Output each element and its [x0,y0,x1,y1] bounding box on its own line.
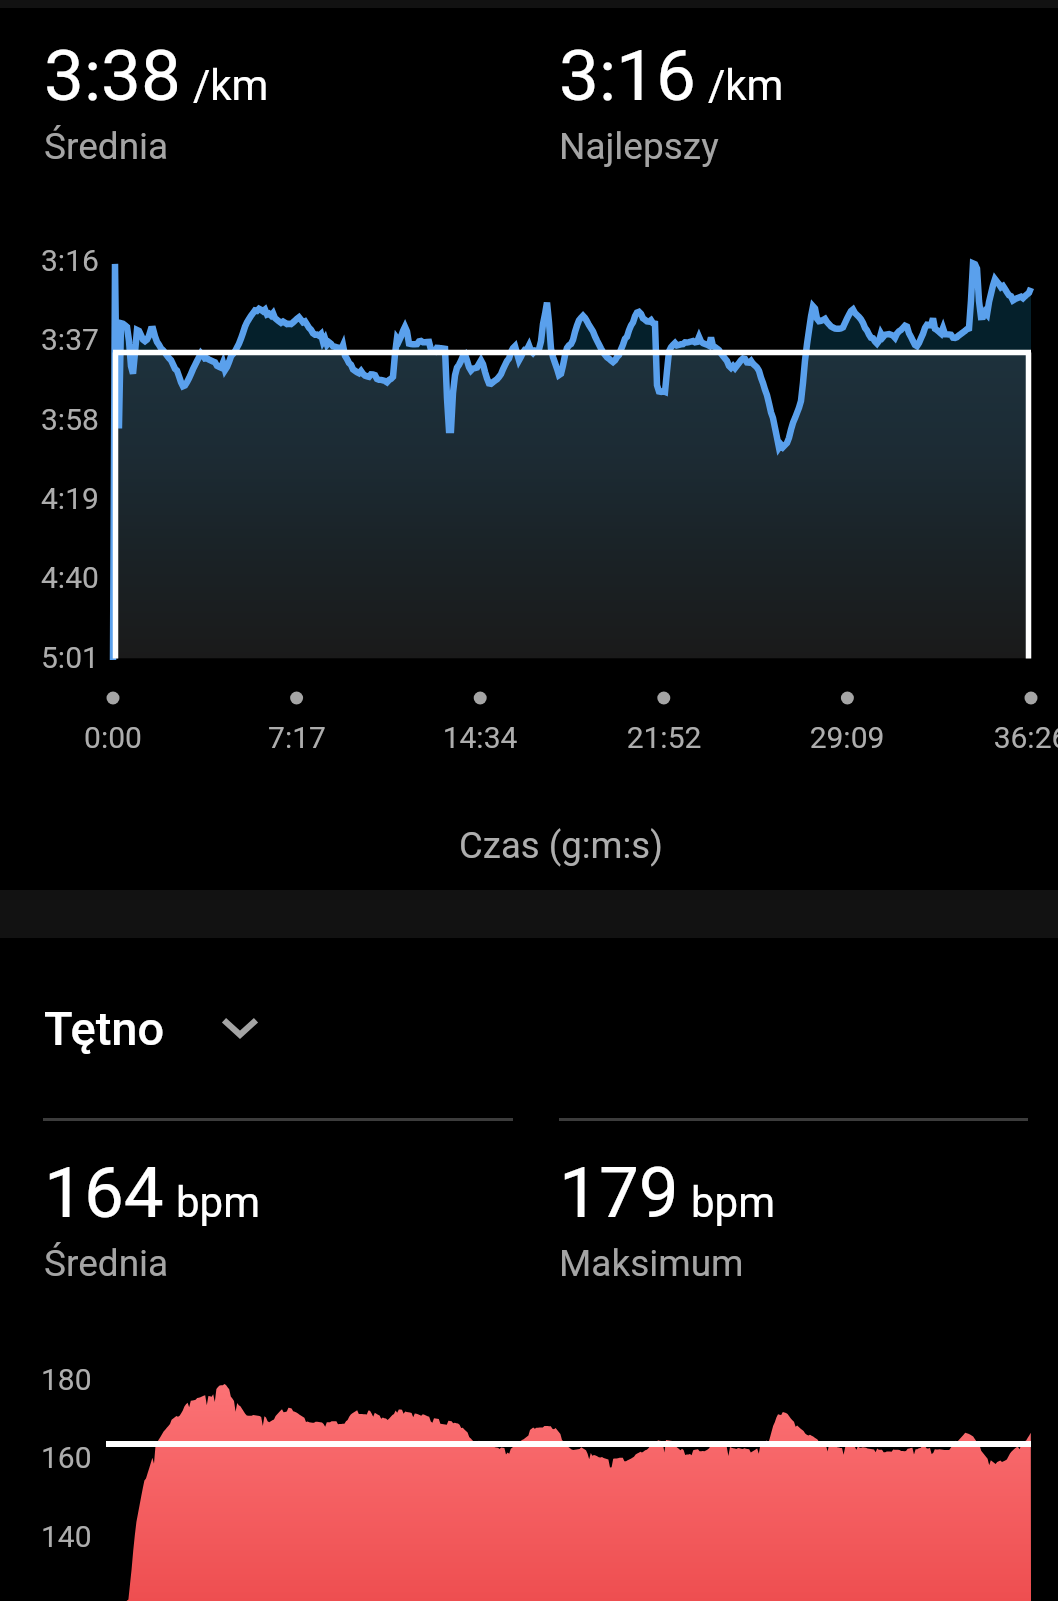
staticText: 29:09 [787,720,907,755]
button[interactable]: 3:38 [0,34,515,174]
staticText: 14:34 [420,720,540,755]
staticText: 179 [559,1151,679,1234]
staticText: Średnia [44,125,169,168]
staticText: 5:01 [41,640,99,675]
staticText: Najlepszy [559,125,719,168]
staticText: bpm [176,1178,260,1227]
staticText: 140 [41,1519,92,1554]
staticText: 164 [44,1151,164,1234]
staticText: 180 [41,1362,92,1397]
staticText: 4:40 [41,560,99,595]
staticText: 3:37 [41,322,99,357]
button[interactable]: 164 [0,1151,515,1291]
staticText: Tętno [44,1001,165,1056]
staticText: 3:58 [41,402,99,437]
button[interactable]: 3:16 [515,34,1030,174]
staticText: Maksimum [559,1242,744,1285]
staticText: 7:17 [237,720,357,755]
staticText: 4:19 [41,481,99,516]
staticText: 160 [41,1440,92,1475]
staticText: Czas (g:m:s) [48,824,1058,867]
staticText: 3:16 [559,34,696,117]
staticText: 3:38 [44,34,181,117]
button[interactable]: 179 [515,1151,1030,1291]
staticText: /km [708,61,784,110]
staticText: /km [193,61,269,110]
staticText: 3:16 [41,243,99,278]
staticText: 0:00 [53,720,173,755]
other: Zwiń wykres tętna [218,1006,262,1050]
button[interactable]: Tętno [0,990,1058,1066]
staticText: Średnia [44,1242,169,1285]
staticText: 21:52 [604,720,724,755]
staticText: 36:26 [971,720,1058,755]
staticText: bpm [691,1178,775,1227]
